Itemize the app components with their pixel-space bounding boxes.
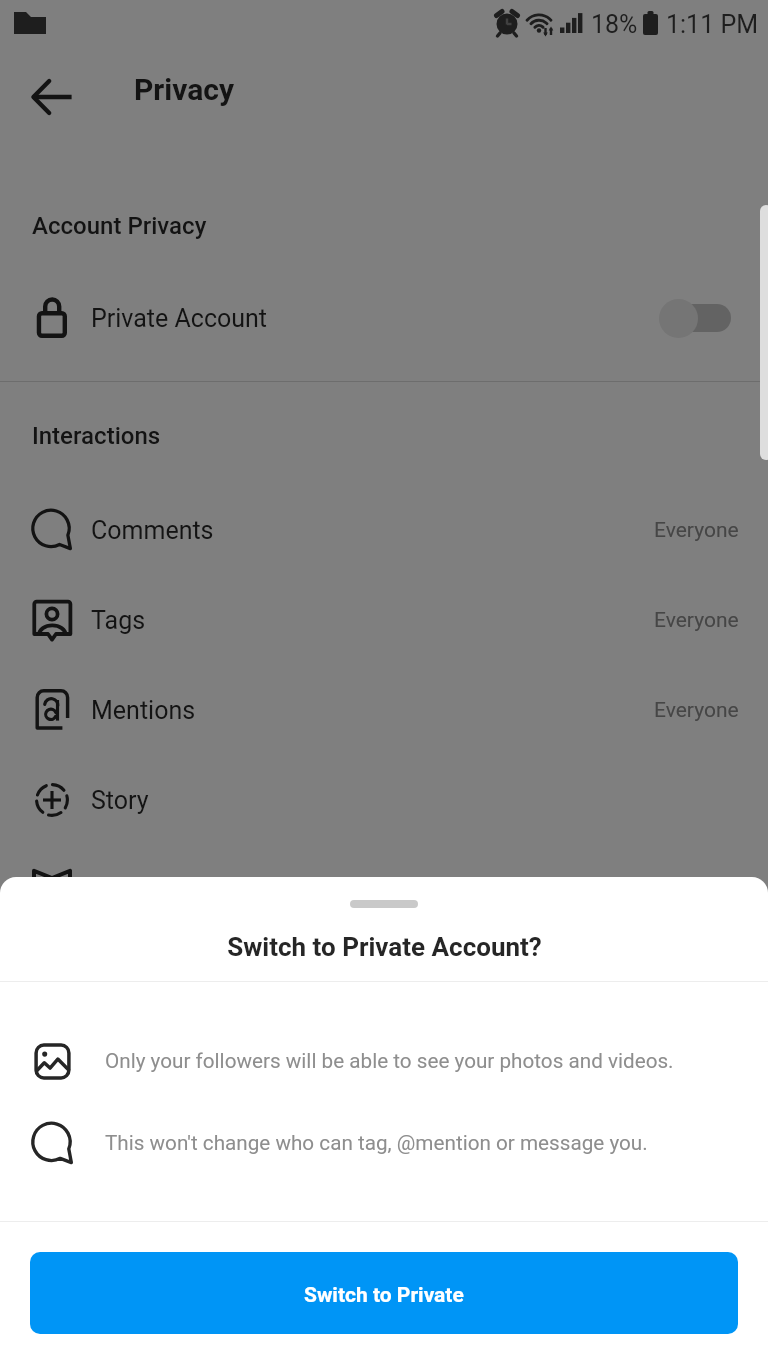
staticText: Only your followers will be able to see … bbox=[105, 1049, 674, 1073]
button[interactable]: Comments bbox=[0, 485, 768, 575]
staticText: Mentions bbox=[91, 696, 196, 725]
staticText: 18% bbox=[591, 10, 638, 39]
staticText: Everyone bbox=[654, 698, 739, 723]
staticText: Everyone bbox=[654, 518, 739, 543]
staticText: This won't change who can tag, @mention … bbox=[105, 1131, 648, 1155]
staticText: Privacy bbox=[134, 72, 235, 107]
staticText: Switch to Private bbox=[304, 1283, 464, 1308]
button[interactable]: Private Account bbox=[0, 273, 768, 363]
button[interactable]: Story bbox=[0, 755, 768, 845]
button[interactable]: Switch to Private bbox=[30, 1252, 738, 1334]
staticText: Tags bbox=[91, 606, 146, 635]
staticText: Interactions bbox=[32, 422, 161, 450]
staticText: Story bbox=[91, 786, 149, 815]
staticText: Account Privacy bbox=[32, 212, 207, 240]
staticText: 1:11 PM bbox=[666, 10, 759, 39]
staticText: Private Account bbox=[91, 304, 267, 333]
button[interactable]: Back bbox=[12, 77, 92, 117]
staticText: Messages bbox=[91, 876, 206, 905]
button[interactable]: Messages bbox=[0, 845, 768, 935]
staticText: Everyone bbox=[654, 608, 739, 633]
staticText: Switch to Private Account? bbox=[227, 932, 542, 962]
button[interactable]: Tags bbox=[0, 575, 768, 665]
button[interactable]: Mentions bbox=[0, 665, 768, 755]
staticText: Comments bbox=[91, 516, 214, 545]
